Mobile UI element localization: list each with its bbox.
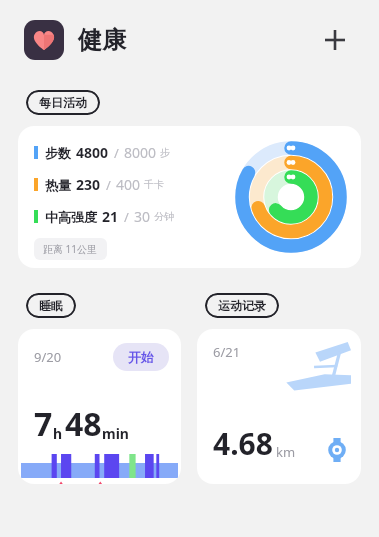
staticText: 4800 <box>76 143 109 162</box>
staticText: 6/21 <box>213 343 241 361</box>
button[interactable]: Add <box>315 20 355 60</box>
staticText: 9/20 <box>34 348 62 366</box>
button[interactable]: 9/20 <box>18 329 181 484</box>
button[interactable]: 睡眠 <box>26 293 76 318</box>
staticText: 21 <box>102 207 119 226</box>
button[interactable]: 距离 11公里 <box>34 238 107 260</box>
button[interactable]: Health <box>24 20 64 60</box>
button[interactable]: 步数 <box>18 126 361 268</box>
button[interactable]: 开始 <box>113 343 169 371</box>
staticText: 中高强度 <box>45 209 97 225</box>
staticText: 健康 <box>78 25 126 55</box>
staticText: 步数 <box>45 145 71 161</box>
staticText: / <box>124 208 129 226</box>
button[interactable]: Watch device <box>327 438 347 462</box>
staticText: min <box>102 424 129 443</box>
staticText: h <box>53 424 63 443</box>
staticText: 分钟 <box>154 210 174 223</box>
staticText: 睡眠 <box>39 298 63 313</box>
button[interactable]: 每日活动 <box>26 90 100 115</box>
button[interactable]: 运动记录 <box>205 293 279 318</box>
staticText: 400 <box>116 175 141 194</box>
staticText: 开始 <box>128 349 154 365</box>
staticText: / <box>114 144 119 162</box>
staticText: 运动记录 <box>218 298 266 313</box>
staticText: 千卡 <box>144 178 164 191</box>
staticText: 距离 11公里 <box>43 242 98 256</box>
staticText: 48 <box>65 402 102 446</box>
staticText: / <box>106 176 111 194</box>
staticText: 30 <box>134 207 151 226</box>
staticText: 每日活动 <box>39 95 87 110</box>
staticText: 7 <box>34 402 53 446</box>
staticText: 230 <box>76 175 101 194</box>
staticText: km <box>276 443 296 461</box>
staticText: 4.68 <box>213 423 273 464</box>
staticText: 步 <box>160 146 170 159</box>
staticText: 热量 <box>45 177 71 193</box>
staticText: 8000 <box>124 143 157 162</box>
button[interactable]: 6/21 <box>197 329 361 484</box>
